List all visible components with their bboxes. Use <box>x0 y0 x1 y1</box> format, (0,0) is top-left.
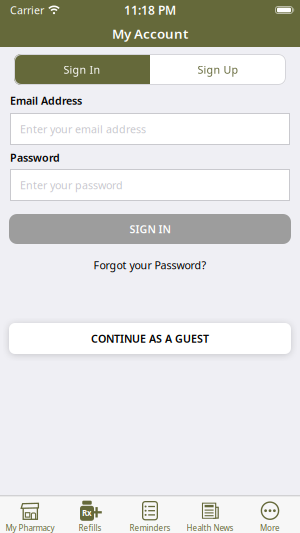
button[interactable]: CONTINUE AS A GUEST <box>9 323 291 354</box>
button[interactable]: Reminders <box>120 496 180 533</box>
button[interactable]: Sign In <box>14 54 150 85</box>
button[interactable]: My Pharmacy <box>0 496 60 533</box>
staticText: Refills <box>78 523 101 533</box>
staticText: Enter your password <box>20 178 123 192</box>
staticText: Sign Up <box>197 62 238 77</box>
staticText: Forgot your Password? <box>93 258 206 272</box>
button[interactable]: Forgot your Password? <box>93 259 206 271</box>
staticText: Password <box>10 150 60 165</box>
staticText: Enter your email address <box>20 122 146 136</box>
staticText: More <box>260 523 280 533</box>
staticText: Email Address <box>10 93 82 108</box>
button[interactable]: More <box>240 496 300 533</box>
button[interactable]: Sign Up <box>150 54 286 85</box>
staticText: CONTINUE AS A GUEST <box>91 331 209 346</box>
staticText: My Pharmacy <box>5 523 54 533</box>
button[interactable]: SIGN IN <box>9 214 291 244</box>
button[interactable]: Enter your email address <box>10 113 290 145</box>
button[interactable]: Enter your password <box>10 169 290 201</box>
staticText: Health News <box>186 523 233 533</box>
button[interactable]: Rx <box>60 496 120 533</box>
staticText: SIGN IN <box>129 222 170 236</box>
staticText: Carrier <box>10 3 44 17</box>
staticText: My Account <box>112 25 188 42</box>
staticText: 11:18 PM <box>124 2 176 18</box>
staticText: Sign In <box>63 62 100 77</box>
staticText: Rx <box>82 508 92 518</box>
staticText: Reminders <box>129 523 170 533</box>
button[interactable]: Health News <box>180 496 240 533</box>
